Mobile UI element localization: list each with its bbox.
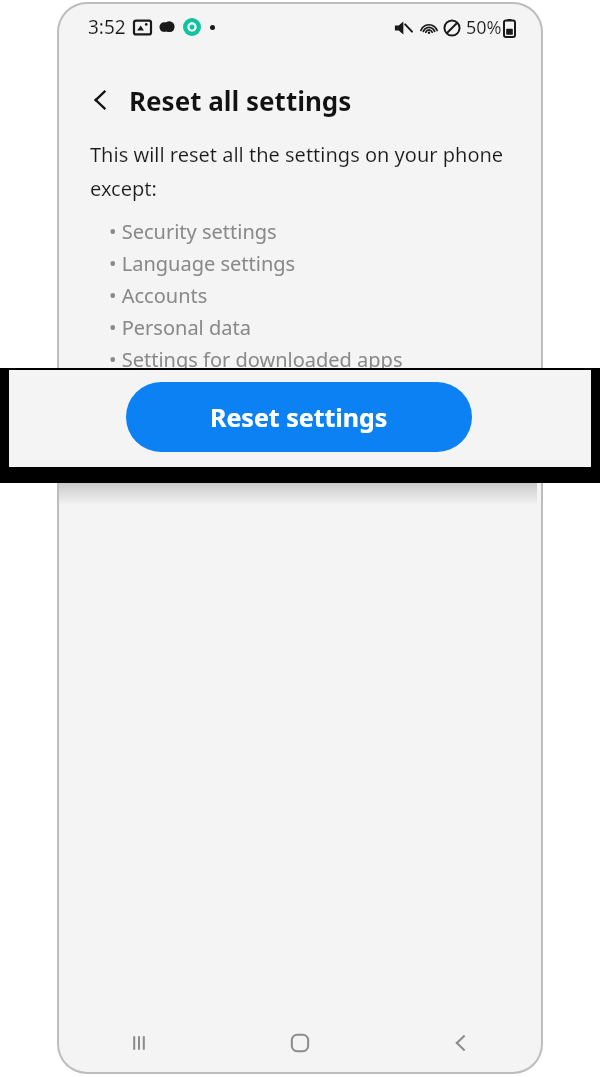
staticText: • Accounts: [109, 282, 208, 309]
button[interactable]: Reset settings: [126, 382, 472, 452]
staticText: Reset settings: [210, 400, 388, 434]
staticText: • Security settings: [109, 218, 277, 245]
staticText: Reset all settings: [129, 83, 352, 118]
button[interactable]: Back: [81, 80, 121, 120]
staticText: 3:52: [88, 14, 126, 40]
staticText: 50%: [466, 15, 502, 40]
staticText: • Personal data: [109, 314, 251, 341]
button[interactable]: Home: [219, 1014, 380, 1072]
staticText: except:: [90, 175, 157, 202]
staticText: • Settings for downloaded apps: [109, 346, 403, 373]
button[interactable]: Recent apps: [59, 1014, 219, 1072]
staticText: • Language settings: [109, 250, 296, 277]
button[interactable]: Back: [380, 1014, 541, 1072]
staticText: This will reset all the settings on your…: [90, 141, 504, 168]
